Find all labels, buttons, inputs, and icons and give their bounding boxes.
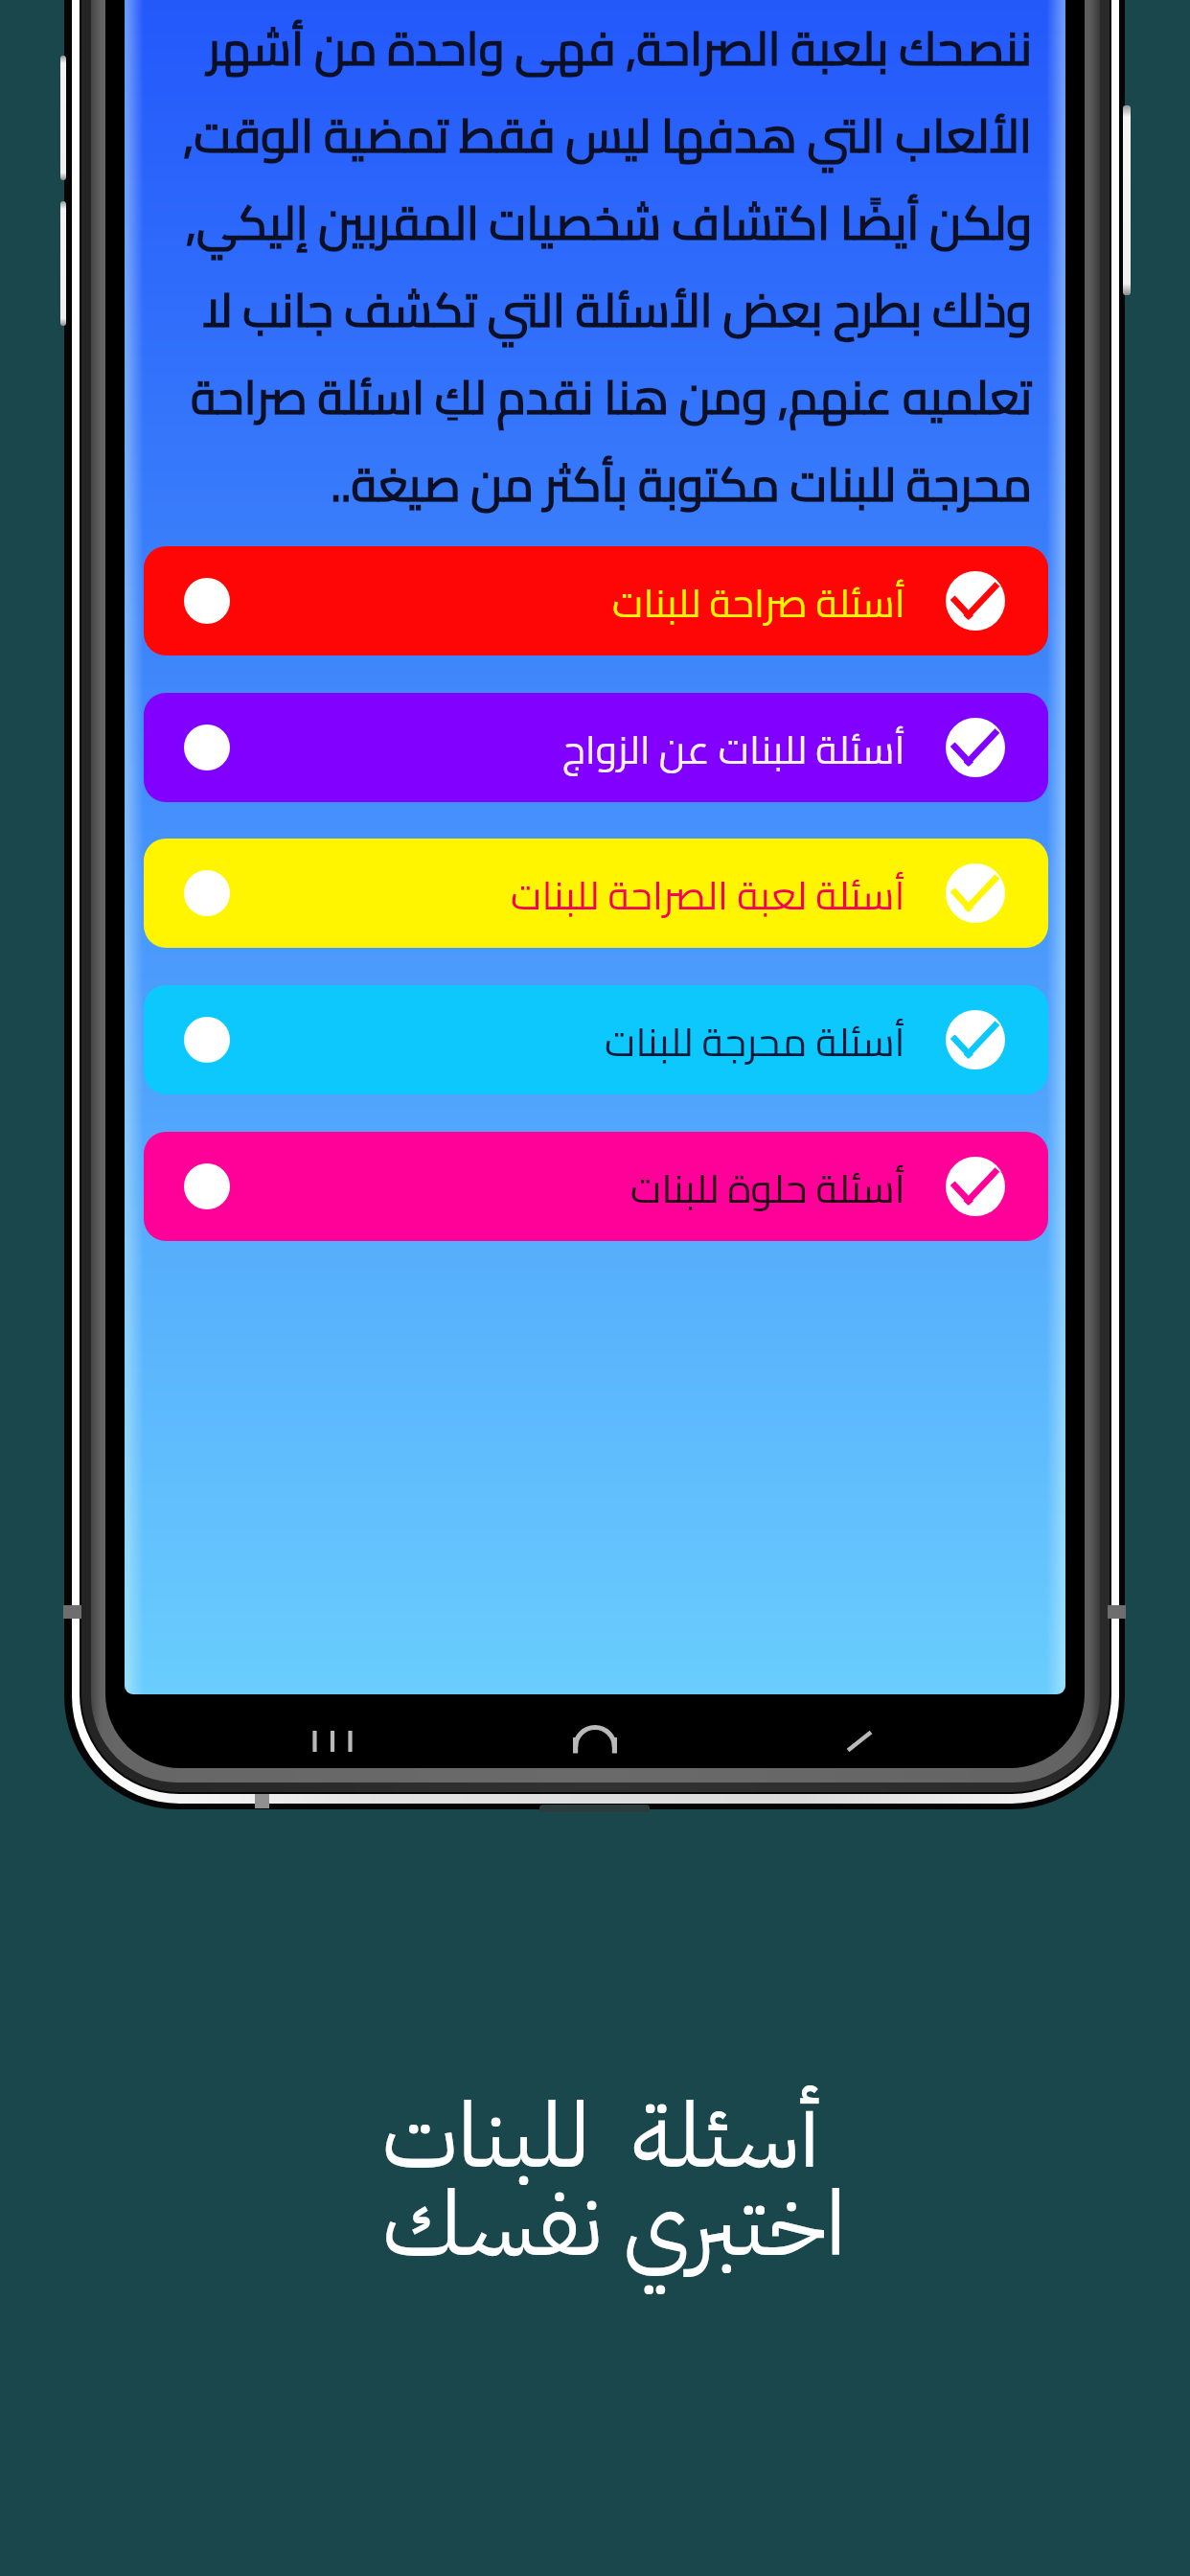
button[interactable]: Home (552, 1697, 638, 1783)
button[interactable]: أسئلة محرجة للبنات (144, 985, 1048, 1094)
staticText: أسئلة حلوة للبنات (630, 1152, 905, 1226)
staticText: أسئلة للبنات (6, 2069, 1190, 2204)
staticText: أسئلة لعبة الصراحة للبنات (511, 859, 905, 932)
button[interactable]: Recent apps (289, 1698, 376, 1784)
staticText: اختبري نفسك (19, 2157, 1190, 2292)
staticText: أسئلة محرجة للبنات (605, 1005, 905, 1079)
button[interactable]: أسئلة للبنات عن الزواج (144, 693, 1048, 802)
button[interactable]: Back (816, 1698, 903, 1784)
staticText: ننصحك بلعبة الصراحة, فهى واحدة من أشهر ا… (181, 4, 1032, 528)
button[interactable]: أسئلة حلوة للبنات (144, 1132, 1048, 1241)
button[interactable]: أسئلة لعبة الصراحة للبنات (144, 839, 1048, 948)
button[interactable]: أسئلة صراحة للبنات (144, 546, 1048, 655)
staticText: أسئلة للبنات عن الزواج (562, 713, 905, 787)
staticText: أسئلة صراحة للبنات (612, 566, 905, 640)
